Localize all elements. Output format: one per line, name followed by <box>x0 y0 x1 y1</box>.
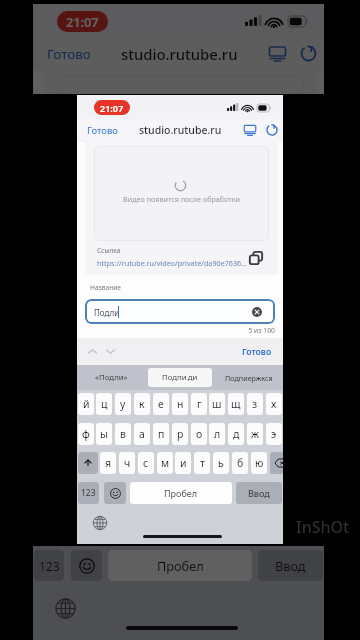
staticText: и <box>180 456 187 470</box>
button[interactable]: Ввод <box>236 482 282 504</box>
button[interactable]: Copy link <box>245 247 267 269</box>
button[interactable]: ь <box>213 452 229 474</box>
staticText: т <box>200 456 205 470</box>
button[interactable]: Emoji <box>71 550 102 581</box>
staticText: к <box>139 397 145 411</box>
staticText: Название <box>90 283 121 292</box>
button[interactable]: Reader view <box>241 121 259 139</box>
staticText: э <box>271 427 277 441</box>
staticText: 123 <box>81 487 96 499</box>
staticText: Готово <box>47 45 91 63</box>
staticText: в <box>120 427 126 441</box>
staticText: ц <box>101 397 108 411</box>
button[interactable]: Clear text <box>252 307 262 317</box>
button[interactable]: «Подли» <box>77 365 145 390</box>
button[interactable]: н <box>172 393 188 415</box>
staticText: й <box>83 397 90 411</box>
button[interactable]: Reader view <box>265 41 290 66</box>
button[interactable]: Подпи ди <box>145 365 214 390</box>
staticText: Готово <box>242 346 272 358</box>
button[interactable]: п <box>153 423 169 445</box>
button[interactable]: у <box>115 393 131 415</box>
staticText: Ввод <box>275 557 306 574</box>
staticText: д <box>233 427 240 441</box>
staticText: у <box>120 397 126 411</box>
staticText: ж <box>251 427 259 441</box>
button[interactable]: ч <box>119 452 135 474</box>
staticText: Подпиержкся <box>225 373 273 383</box>
staticText: Подпи ди <box>162 372 198 383</box>
staticText: ф <box>82 427 90 441</box>
staticText: р <box>177 427 184 441</box>
button[interactable]: о <box>191 423 207 445</box>
button[interactable]: г <box>191 393 207 415</box>
button[interactable]: Подпиержкся <box>214 365 283 390</box>
staticText: ш <box>212 397 222 411</box>
staticText: studio.rutube.ru <box>121 44 238 64</box>
staticText: е <box>158 397 164 411</box>
button[interactable]: ш <box>209 393 225 415</box>
staticText: ю <box>255 456 264 470</box>
staticText: б <box>237 456 244 470</box>
button[interactable]: studio.rutube.ru <box>114 41 244 66</box>
button[interactable]: ц <box>96 393 112 415</box>
button[interactable]: Next field <box>102 343 119 360</box>
staticText: 21:07 <box>100 102 124 114</box>
button[interactable]: Change keyboard <box>92 515 108 531</box>
button[interactable]: studio.rutube.ru <box>134 121 226 139</box>
button[interactable]: й <box>78 393 94 415</box>
button[interactable]: ы <box>96 423 112 445</box>
button[interactable]: Подли <box>85 299 275 324</box>
button[interactable]: Пробел <box>108 550 252 581</box>
staticText: я <box>105 456 112 470</box>
button[interactable]: ж <box>247 423 263 445</box>
button[interactable]: а <box>134 423 150 445</box>
button[interactable]: я <box>100 452 116 474</box>
staticText: studio.rutube.ru <box>139 123 222 137</box>
button[interactable]: л <box>209 423 225 445</box>
staticText: п <box>158 427 165 441</box>
staticText: з <box>252 397 258 411</box>
button[interactable]: ю <box>251 452 267 474</box>
button[interactable]: Готово <box>237 343 277 360</box>
button[interactable]: Backspace <box>270 452 283 474</box>
button[interactable]: д <box>228 423 244 445</box>
staticText: Пробел <box>157 557 204 574</box>
button[interactable]: э <box>266 423 282 445</box>
button[interactable]: б <box>232 452 248 474</box>
staticText: https://rutube.ru/video/private/da90e763… <box>97 258 247 268</box>
button[interactable]: з <box>247 393 263 415</box>
staticText: ы <box>100 427 108 441</box>
button[interactable]: Shift <box>78 452 98 474</box>
button[interactable]: щ <box>228 393 244 415</box>
button[interactable]: е <box>153 393 169 415</box>
staticText: 5 из 100 <box>235 326 275 335</box>
button[interactable]: м <box>157 452 173 474</box>
button[interactable]: Previous field <box>84 343 101 360</box>
staticText: н <box>177 397 184 411</box>
staticText: г <box>197 397 202 411</box>
button[interactable]: Готово <box>81 121 123 139</box>
button[interactable]: Reload <box>296 41 321 66</box>
button[interactable]: в <box>115 423 131 445</box>
staticText: л <box>214 427 221 441</box>
button[interactable]: с <box>138 452 154 474</box>
button[interactable]: к <box>134 393 150 415</box>
button[interactable]: Готово <box>39 41 98 66</box>
button[interactable]: Reload <box>263 121 281 139</box>
button[interactable]: р <box>172 423 188 445</box>
button[interactable]: и <box>175 452 191 474</box>
staticText: щ <box>231 397 241 411</box>
staticText: Подли <box>94 307 120 318</box>
button[interactable]: 123 <box>78 482 99 504</box>
button[interactable]: 123 <box>34 550 64 581</box>
button[interactable]: ф <box>78 423 94 445</box>
button[interactable]: т <box>194 452 210 474</box>
button[interactable]: Пробел <box>130 482 232 504</box>
staticText: а <box>139 427 145 441</box>
button[interactable]: Ввод <box>258 550 323 581</box>
staticText: InShOt <box>296 516 350 538</box>
button[interactable]: Change keyboard <box>54 597 77 620</box>
button[interactable]: х <box>266 393 282 415</box>
button[interactable]: Emoji <box>104 482 126 504</box>
